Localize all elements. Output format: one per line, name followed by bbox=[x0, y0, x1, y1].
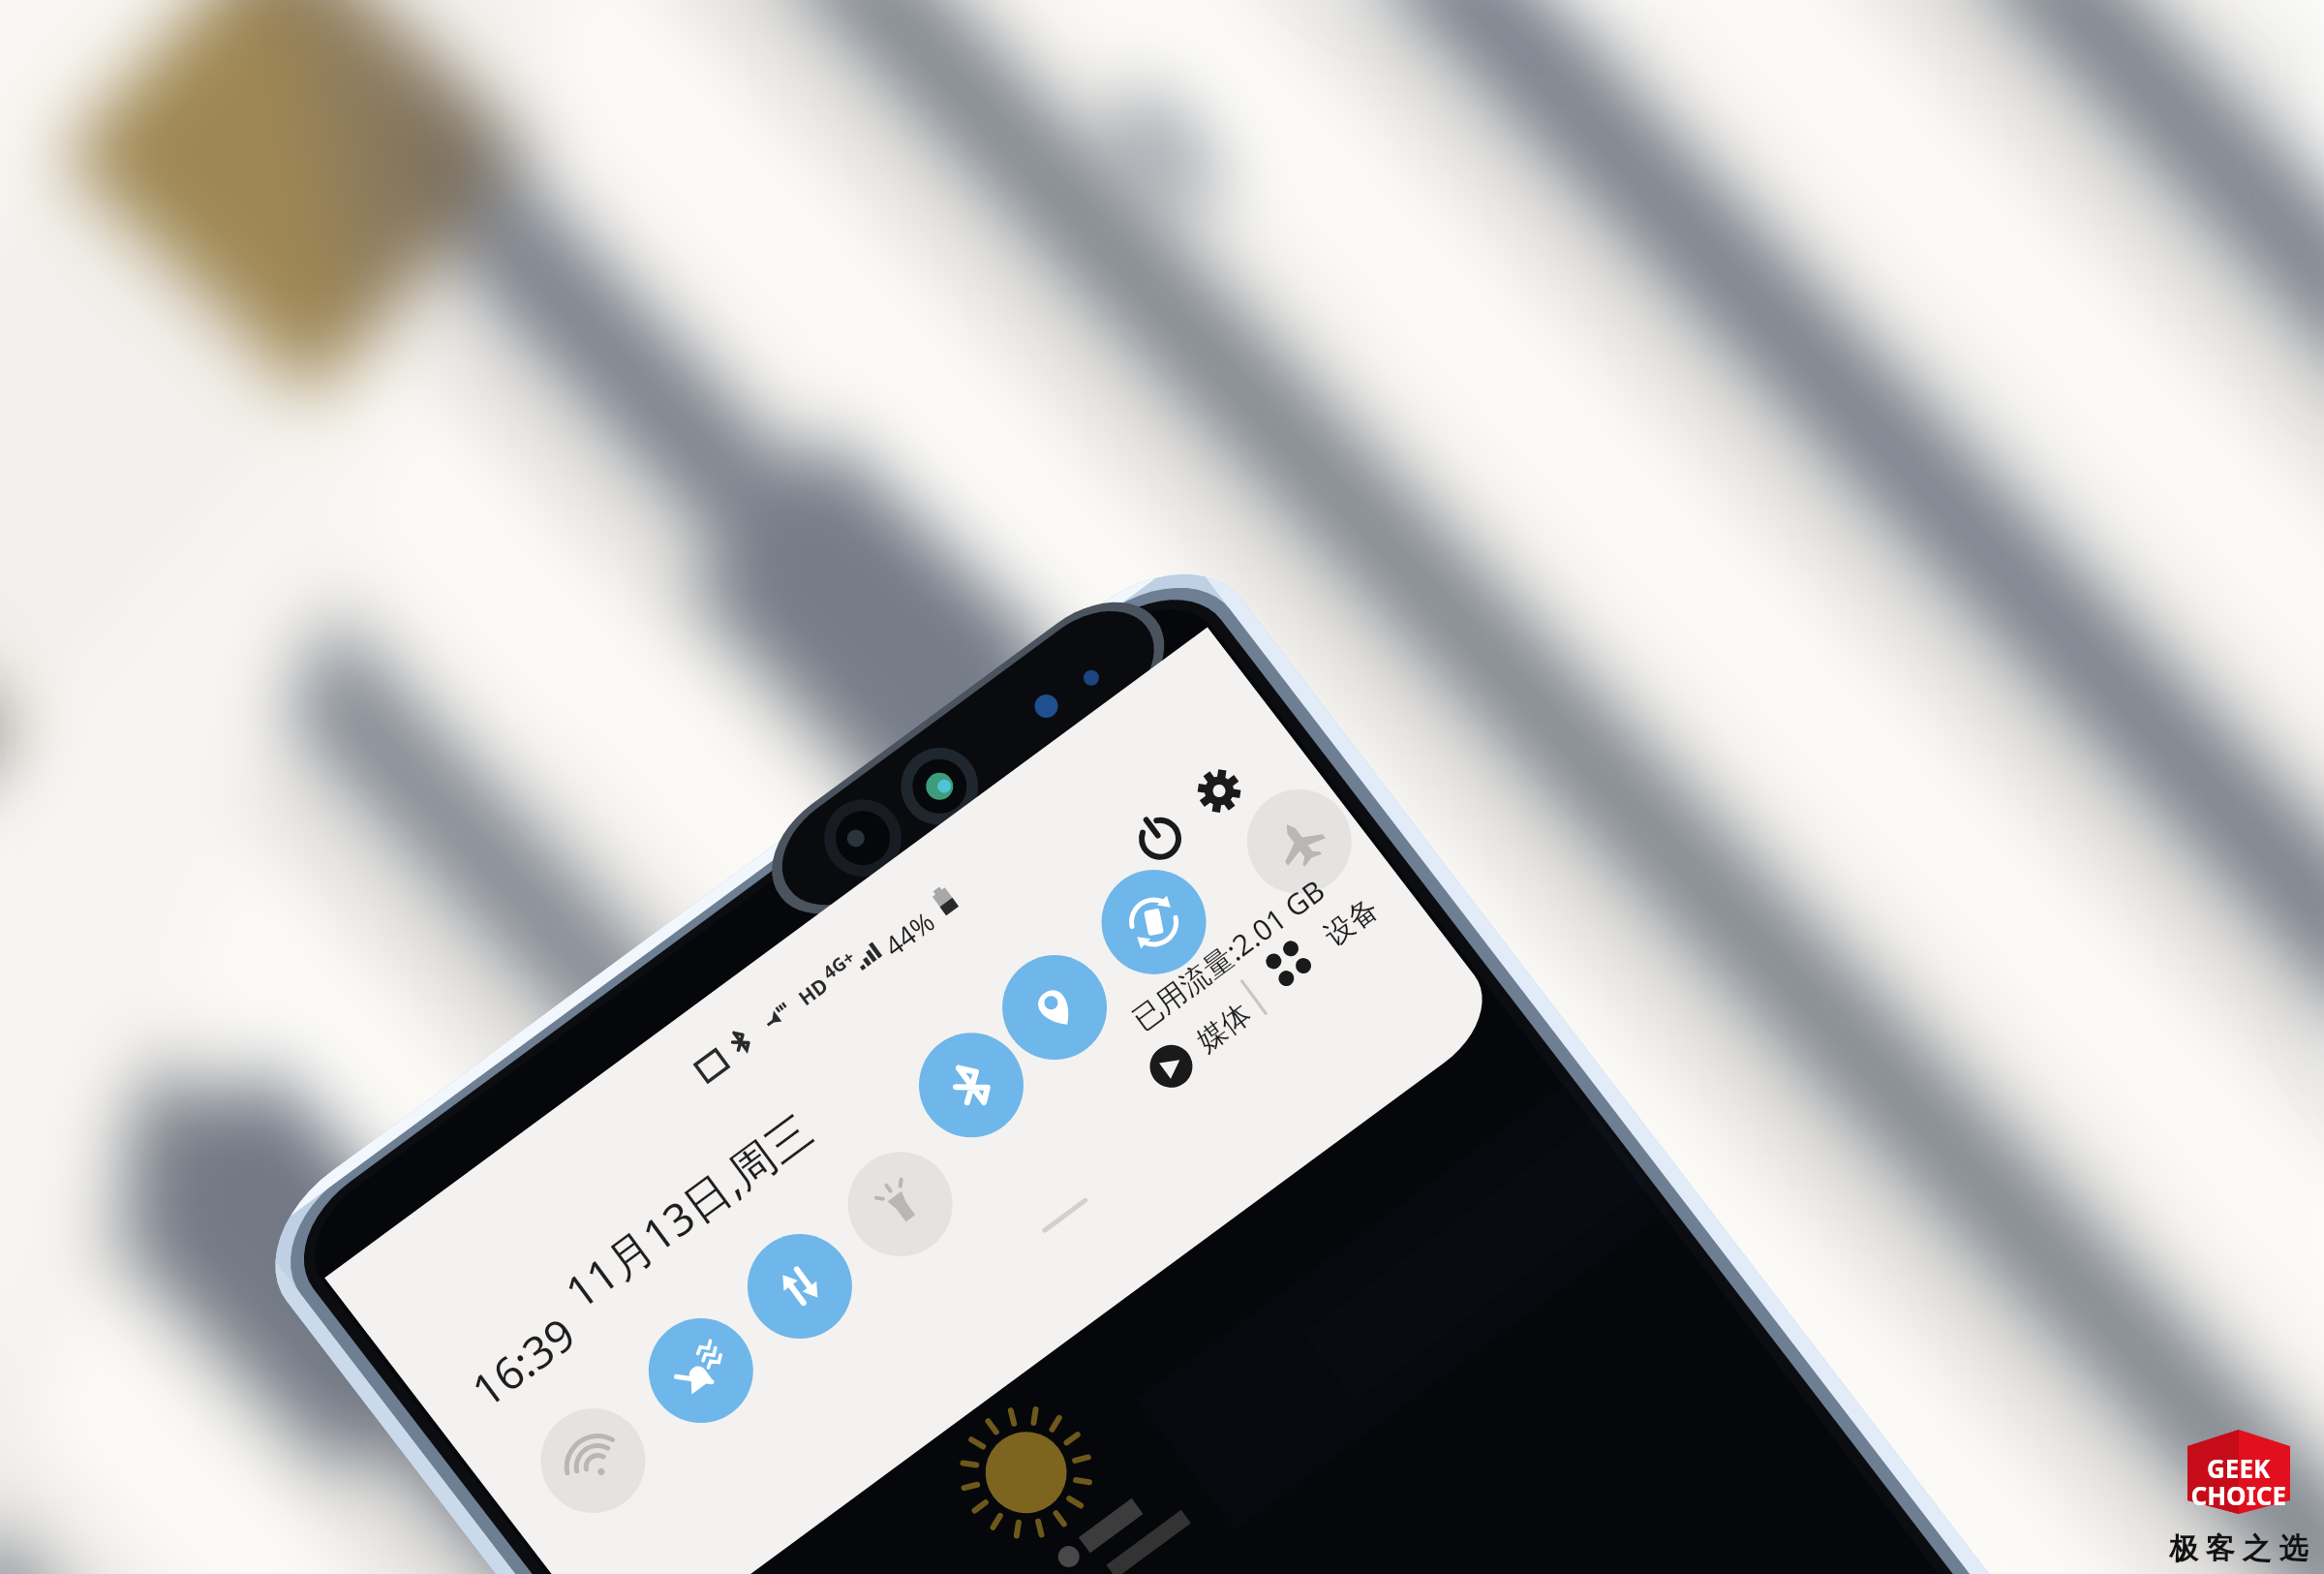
button[interactable]: Mobile data bbox=[745, 1232, 853, 1341]
button[interactable]: Silent mode bbox=[646, 1316, 754, 1425]
button[interactable]: Location bbox=[1000, 953, 1109, 1062]
button[interactable]: Play media bbox=[1116, 1011, 1225, 1120]
button[interactable]: Devices bbox=[1234, 909, 1342, 1017]
button[interactable]: Airplane mode bbox=[1244, 787, 1353, 895]
button[interactable]: Bluetooth bbox=[917, 1031, 1025, 1139]
button[interactable]: Wi-Fi bbox=[560, 1391, 668, 1499]
button[interactable]: Auto rotate bbox=[1099, 867, 1208, 975]
button[interactable]: 16:39 11月13日,周三 bbox=[447, 1201, 835, 1317]
button[interactable]: Power bbox=[1105, 784, 1213, 892]
button[interactable]: Settings bbox=[1165, 736, 1273, 845]
button[interactable]: Flashlight bbox=[845, 1150, 954, 1258]
